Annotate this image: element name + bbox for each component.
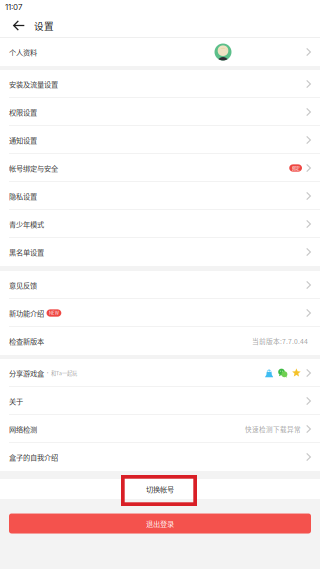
staticText: 安装及流量设置 [9, 79, 58, 89]
staticText: · 和Ta一起玩 [44, 369, 77, 377]
button[interactable]: 新功能介绍 [0, 299, 320, 327]
staticText: 关于 [9, 396, 23, 406]
button[interactable]: 分享游戏盒 [0, 359, 320, 387]
staticText: 权限设置 [9, 107, 37, 117]
button[interactable]: 关于 [0, 387, 320, 415]
staticText: 青少年模式 [9, 219, 44, 229]
staticText: 黑名单设置 [9, 247, 44, 257]
staticText: 分享游戏盒 [9, 368, 44, 378]
button[interactable]: 退出登录 [9, 513, 311, 533]
staticText: 意见反馈 [9, 280, 37, 290]
staticText: 退出登录 [146, 518, 174, 529]
button[interactable]: 网络检测 [0, 415, 320, 443]
button[interactable]: 安装及流量设置 [0, 70, 320, 98]
staticText: 盒子的自我介绍 [9, 452, 58, 462]
button[interactable]: 权限设置 [0, 98, 320, 126]
staticText: NEW [49, 310, 59, 316]
button[interactable]: 青少年模式 [0, 210, 320, 238]
button[interactable]: 盒子的自我介绍 [0, 443, 320, 471]
staticText: 隐私设置 [9, 191, 37, 201]
button[interactable]: 通知设置 [0, 126, 320, 154]
staticText: 新功能介绍 [9, 308, 44, 318]
button[interactable]: 意见反馈 [0, 271, 320, 299]
staticText: 网络检测 [9, 424, 37, 434]
button[interactable]: 个人资料 [0, 38, 320, 66]
staticText: 快速检测下载异常 [245, 424, 301, 434]
button[interactable]: 黑名单设置 [0, 238, 320, 266]
button[interactable]: 隐私设置 [0, 182, 320, 210]
staticText: 设置 [34, 18, 54, 32]
staticText: 绑定 [292, 165, 300, 171]
button[interactable]: 帐号绑定与安全 [0, 154, 320, 182]
staticText: 当前版本:7.7.0.44 [252, 336, 308, 346]
staticText: 通知设置 [9, 135, 37, 145]
button[interactable]: 切换帐号 [0, 479, 320, 499]
button[interactable]: 检查新版本 [0, 327, 320, 355]
button[interactable]: Back [6, 14, 31, 37]
staticText: 检查新版本 [9, 336, 44, 346]
staticText: 帐号绑定与安全 [9, 163, 58, 173]
staticText: 切换帐号 [146, 484, 174, 494]
staticText: 个人资料 [9, 47, 37, 57]
staticText: 11:07 [5, 2, 23, 12]
